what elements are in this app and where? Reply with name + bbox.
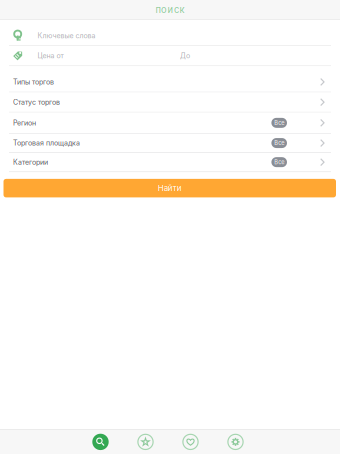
staticText: Ключевые слова bbox=[37, 31, 95, 40]
button[interactable]: Подписки bbox=[175, 429, 205, 454]
button[interactable]: Ключевые слова bbox=[0, 20, 340, 45]
staticText: Типы торгов bbox=[13, 78, 54, 86]
button[interactable]: Статус торгов bbox=[0, 92, 340, 112]
button[interactable]: Торговая площадка bbox=[0, 134, 340, 152]
button[interactable]: Избранное bbox=[130, 429, 160, 454]
button[interactable]: Категории bbox=[0, 153, 340, 171]
button[interactable]: Настройки bbox=[220, 429, 250, 454]
staticText: Цена от bbox=[37, 51, 63, 60]
staticText: Все bbox=[274, 140, 284, 146]
staticText: Статус торгов bbox=[13, 98, 60, 106]
staticText: Все bbox=[274, 119, 284, 126]
button[interactable]: Найти bbox=[3, 179, 336, 197]
button[interactable]: Цена от bbox=[0, 46, 340, 65]
button[interactable]: Типы торгов bbox=[0, 66, 340, 92]
button[interactable]: Поиск bbox=[85, 429, 115, 454]
staticText: До bbox=[180, 51, 190, 60]
button[interactable]: Регион bbox=[0, 113, 340, 133]
staticText: Найти bbox=[158, 183, 182, 193]
staticText: Торговая площадка bbox=[13, 139, 80, 147]
staticText: Все bbox=[274, 159, 284, 166]
staticText: Категории bbox=[13, 158, 48, 166]
staticText: Регион bbox=[13, 119, 36, 127]
staticText: поиск bbox=[155, 4, 184, 15]
